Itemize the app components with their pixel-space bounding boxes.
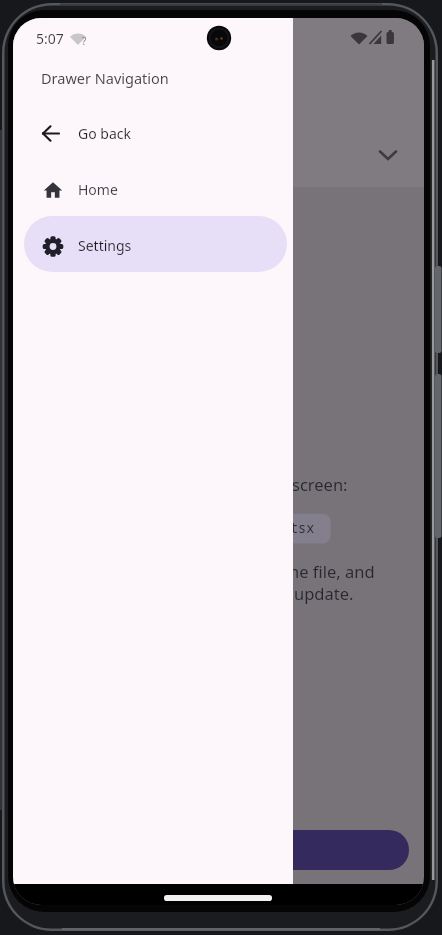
button[interactable]: Go back bbox=[24, 104, 287, 160]
staticText: ne file, and bbox=[289, 560, 375, 582]
staticText: tsx bbox=[290, 519, 315, 537]
button[interactable]: Home bbox=[24, 160, 287, 216]
staticText: update. bbox=[294, 582, 354, 604]
staticText: Go back bbox=[78, 124, 131, 143]
staticText: 5:07 bbox=[36, 29, 64, 48]
staticText: Settings bbox=[78, 236, 132, 255]
button[interactable]: Settings bbox=[24, 216, 287, 272]
staticText: screen: bbox=[292, 473, 348, 495]
staticText: Drawer Navigation bbox=[41, 68, 169, 88]
staticText: Home bbox=[78, 180, 118, 199]
staticText: ? bbox=[82, 34, 87, 48]
